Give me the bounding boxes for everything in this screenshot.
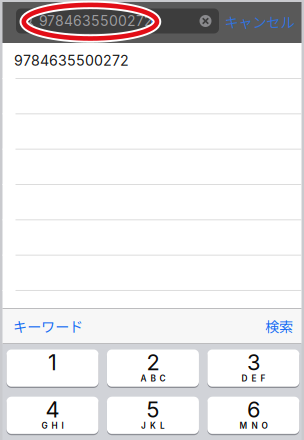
staticText: キャンセル [225,11,295,32]
button[interactable]: 5 [107,397,199,435]
staticText: 2 [146,349,159,375]
button[interactable] [2,114,301,150]
button[interactable]: 6 [207,397,299,435]
button[interactable] [2,256,301,291]
button[interactable] [2,220,301,256]
staticText: A B C [140,373,165,383]
staticText: 1 [48,349,57,375]
staticText: J K L [141,421,165,431]
staticText: キーワード [13,316,83,336]
button[interactable]: 検索 [249,310,293,342]
button[interactable]: 1 [6,349,98,388]
staticText: 6 [247,396,260,423]
button[interactable]: キーワード [13,310,91,342]
staticText: G H I [41,421,63,431]
button[interactable] [2,150,301,185]
staticText: 4 [45,396,59,423]
staticText: 3 [247,349,260,375]
staticText: 検索 [265,316,293,336]
staticText: 9784635500272 [39,12,153,29]
staticText: 9784635500272 [14,52,129,69]
button[interactable]: キャンセル [220,6,300,36]
button[interactable]: Clear text [199,15,211,27]
button[interactable]: 3 [207,349,299,388]
button[interactable] [2,185,301,220]
staticText: 5 [146,396,159,423]
button[interactable]: 4 [6,397,98,435]
staticText: D E F [241,373,265,383]
button[interactable]: 2 [107,349,199,388]
button[interactable] [2,79,301,114]
button[interactable]: 9784635500272 [2,43,301,79]
staticText: M N O [239,421,267,431]
